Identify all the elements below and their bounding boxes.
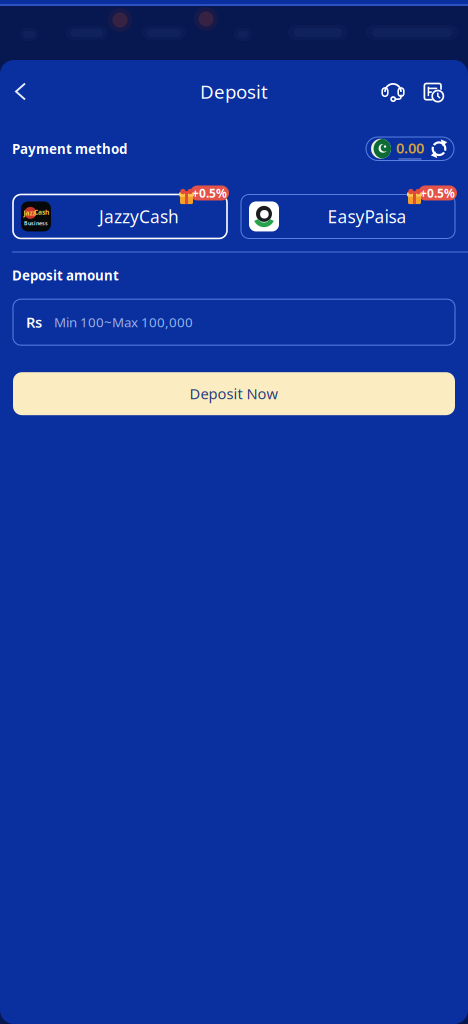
button[interactable]: Jazz	[13, 194, 227, 238]
staticText: Business	[24, 219, 48, 227]
button[interactable]: Customer support	[373, 68, 413, 114]
staticText: EasyPaisa	[327, 205, 406, 228]
staticText: Min 100~Max 100,000	[54, 313, 193, 331]
staticText: 0.00	[396, 138, 424, 157]
staticText: +0.5%	[192, 185, 227, 201]
staticText: Jazz	[23, 208, 35, 217]
button[interactable]: Refresh balance	[366, 137, 454, 160]
button[interactable]: Transaction records	[413, 68, 453, 114]
button[interactable]: Back	[2, 68, 40, 114]
staticText: Deposit	[200, 79, 268, 104]
staticText: Deposit Now	[189, 384, 278, 403]
staticText: Rs	[26, 312, 42, 332]
button[interactable]: Deposit Now	[13, 372, 455, 415]
staticText: JazzyCash	[99, 205, 179, 228]
staticText: +0.5%	[420, 185, 455, 201]
staticText: Cash	[34, 208, 49, 217]
button[interactable]: EasyPaisa	[241, 194, 455, 238]
staticText: Payment method	[12, 140, 127, 158]
staticText: Deposit amount	[12, 266, 119, 284]
